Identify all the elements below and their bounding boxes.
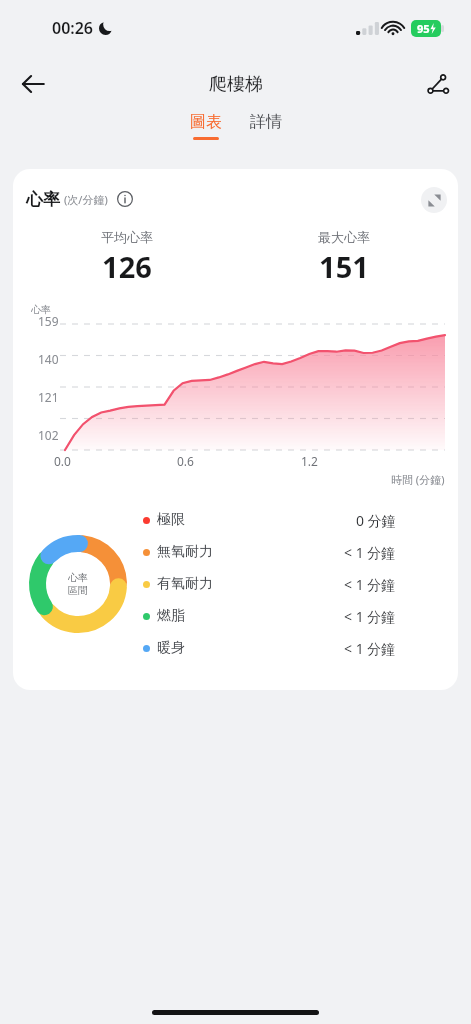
staticText: 爬樓梯 — [209, 73, 263, 96]
staticText: 0.6 — [177, 453, 194, 469]
staticText: 95 — [417, 21, 430, 36]
staticText: 圖表 — [190, 112, 222, 132]
button[interactable]: Info — [113, 187, 137, 211]
staticText: < 1 分鐘 — [344, 607, 396, 626]
button[interactable]: Share — [415, 61, 461, 107]
button[interactable]: 無氧耐力 — [143, 536, 458, 568]
staticText: 區間 — [68, 584, 88, 597]
button[interactable]: Expand — [421, 187, 447, 213]
staticText: 詳情 — [250, 112, 282, 132]
staticText: 最大心率 — [318, 229, 370, 245]
staticText: 極限 — [157, 511, 185, 529]
button[interactable]: 暖身 — [143, 632, 458, 664]
staticText: 無氧耐力 — [157, 543, 213, 561]
button[interactable]: 詳情 — [242, 112, 290, 132]
button[interactable]: 燃脂 — [143, 600, 458, 632]
staticText: 燃脂 — [157, 607, 185, 625]
staticText: 暖身 — [157, 639, 185, 657]
staticText: 心率 — [68, 571, 88, 584]
staticText: 平均心率 — [101, 229, 153, 245]
staticText: 心率 — [26, 189, 60, 210]
staticText: (次/分鐘) — [64, 192, 108, 207]
staticText: 時間 (分鐘) — [391, 472, 445, 487]
staticText: < 1 分鐘 — [344, 575, 396, 594]
button[interactable]: 極限 — [143, 504, 458, 536]
staticText: 00:26 — [52, 17, 94, 39]
button[interactable]: Back — [10, 61, 56, 107]
staticText: 0.0 — [54, 453, 71, 469]
button[interactable]: 有氧耐力 — [143, 568, 458, 600]
staticText: 102 — [38, 427, 59, 443]
staticText: 151 — [319, 247, 369, 286]
staticText: 126 — [102, 247, 152, 286]
staticText: 140 — [38, 351, 59, 367]
staticText: < 1 分鐘 — [344, 543, 396, 562]
staticText: < 1 分鐘 — [344, 639, 396, 658]
staticText: 心率 — [31, 303, 51, 316]
staticText: 121 — [38, 389, 59, 405]
button[interactable]: 圖表 — [182, 112, 230, 140]
staticText: 0 分鐘 — [356, 511, 396, 530]
staticText: 有氧耐力 — [157, 575, 213, 593]
staticText: 159 — [38, 313, 59, 329]
staticText: 1.2 — [301, 453, 318, 469]
